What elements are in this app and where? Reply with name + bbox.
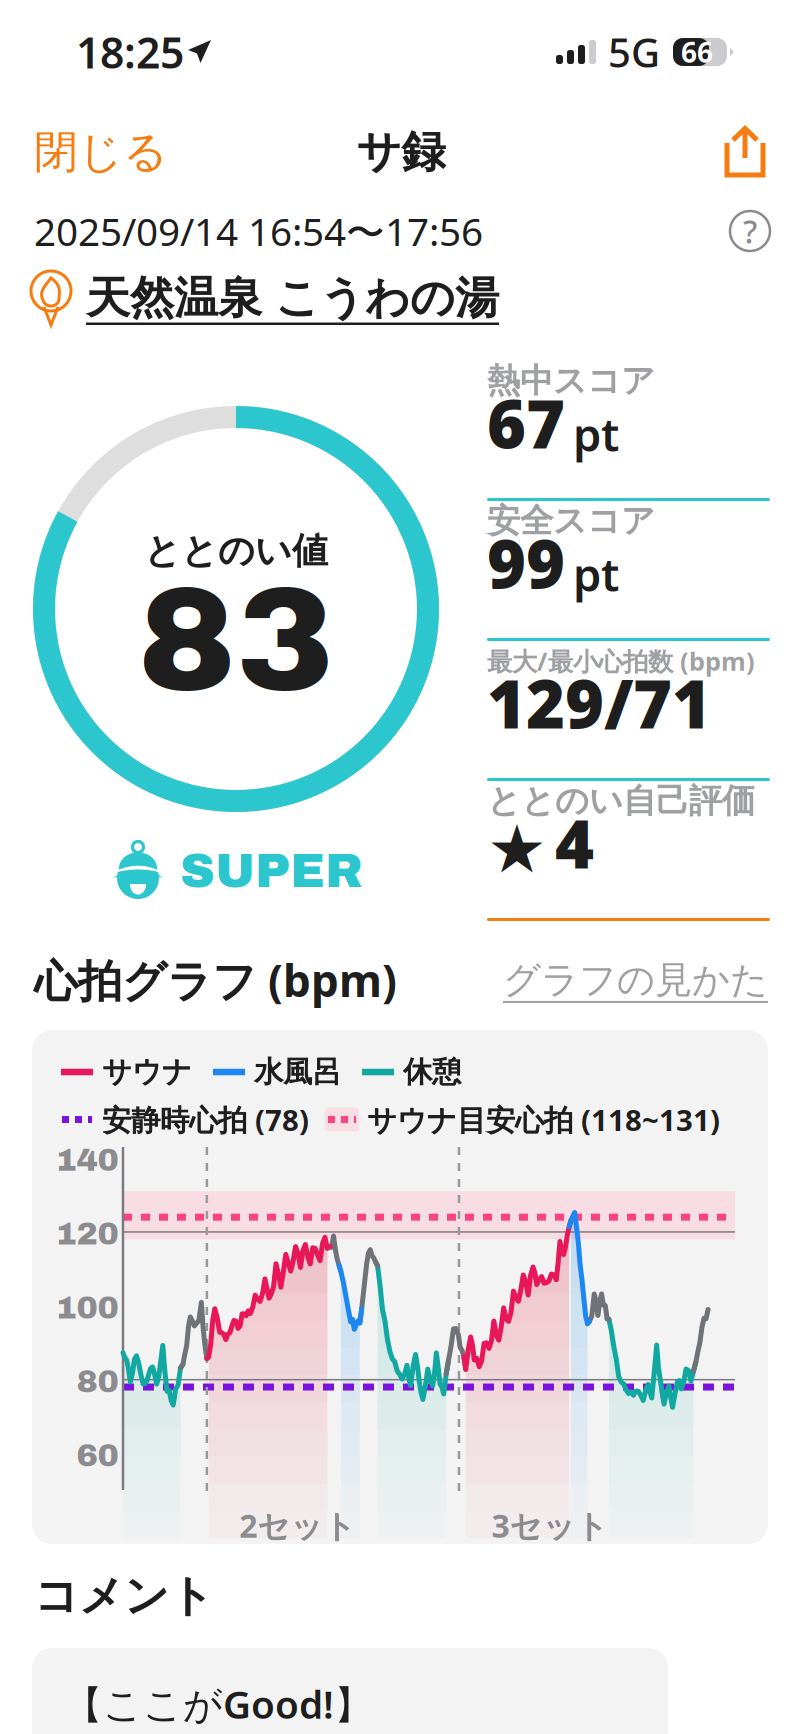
staticText: グラフの見かた xyxy=(503,957,768,1003)
staticText: ★ xyxy=(487,811,547,887)
staticText: SUPER xyxy=(180,845,362,897)
staticText: 【ここがGood!】 xyxy=(64,1678,373,1729)
staticText: 最大/最小心拍数 (bpm) xyxy=(487,644,755,678)
staticText: サウナ目安心拍 (118~131) xyxy=(367,1100,720,1139)
staticText: 水風呂 xyxy=(254,1054,341,1090)
staticText: 心拍グラフ (bpm) xyxy=(34,951,397,1009)
staticText: 5G xyxy=(608,25,660,78)
staticText: 安全スコア xyxy=(487,500,655,541)
staticText: pt xyxy=(573,544,619,604)
staticText: サウナ xyxy=(102,1054,192,1090)
staticText: 120 xyxy=(55,1216,118,1251)
staticText: コメント xyxy=(34,1569,214,1623)
button[interactable]: ヘルプ xyxy=(730,211,770,251)
staticText: 83 xyxy=(138,560,334,720)
staticText: 閉じる xyxy=(34,125,168,179)
staticText: 99 xyxy=(487,518,565,607)
button[interactable]: 閉じる xyxy=(34,125,168,179)
staticText: ? xyxy=(743,210,757,252)
staticText: 安静時心拍 (78) xyxy=(102,1100,309,1139)
staticText: 2025/09/14 16:54〜17:56 xyxy=(34,205,483,257)
staticText: 天然温泉 こうわの湯 xyxy=(86,271,499,325)
staticText: ととのい値 xyxy=(144,529,328,573)
staticText: 67 xyxy=(487,378,565,467)
staticText: 140 xyxy=(55,1143,118,1177)
staticText: pt xyxy=(573,404,619,464)
staticText: 129/71 xyxy=(487,658,711,747)
button[interactable]: グラフの見かた xyxy=(503,957,768,1003)
staticText: ととのい自己評価 xyxy=(487,780,755,821)
staticText: 66 xyxy=(681,33,713,71)
staticText: 熱中スコア xyxy=(487,360,655,401)
staticText: 休憩 xyxy=(403,1054,461,1090)
staticText: 18:25 xyxy=(76,24,184,80)
button[interactable]: 天然温泉 こうわの湯 xyxy=(0,262,800,334)
staticText: サ録 xyxy=(356,125,445,179)
staticText: 2セット xyxy=(239,1504,356,1546)
staticText: 4 xyxy=(555,798,594,887)
staticText: 60 xyxy=(76,1438,118,1473)
staticText: 3セット xyxy=(491,1504,608,1546)
staticText: 80 xyxy=(76,1364,118,1399)
staticText: 100 xyxy=(55,1290,118,1325)
button[interactable]: 共有 xyxy=(722,125,768,179)
